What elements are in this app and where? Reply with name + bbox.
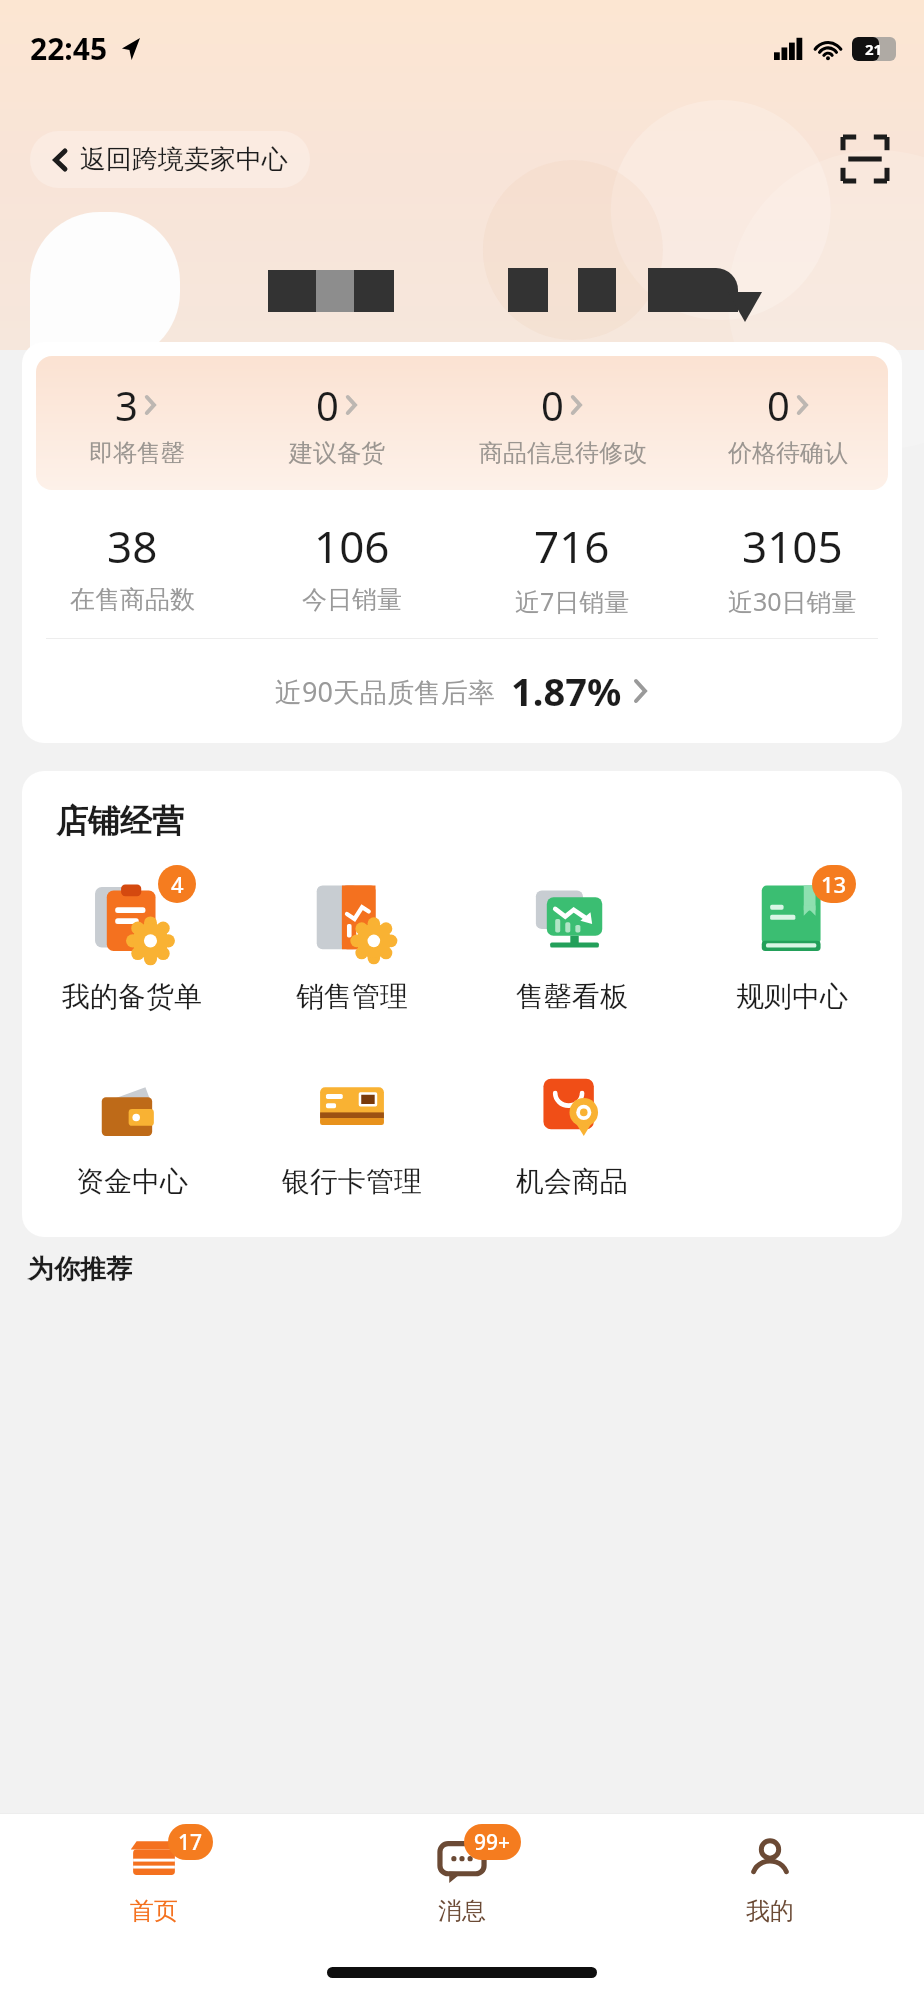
staticText: 消息 <box>438 1896 486 1926</box>
staticText: 1.87% <box>511 665 622 717</box>
button[interactable]: 3 <box>36 378 237 468</box>
staticText: 0 <box>316 378 339 432</box>
staticText: 资金中心 <box>76 1164 188 1199</box>
button[interactable]: 银行卡管理 <box>242 1052 462 1203</box>
button[interactable]: 716 <box>462 516 682 618</box>
staticText: 3105 <box>742 516 843 576</box>
staticText: 销售管理 <box>296 979 408 1014</box>
staticText: 17 <box>178 1828 203 1857</box>
staticText: 在售商品数 <box>70 584 195 615</box>
staticText: 今日销量 <box>302 584 402 615</box>
staticText: 近90天品质售后率 <box>275 673 495 710</box>
button[interactable]: 机会商品 <box>462 1052 682 1203</box>
staticText: 3 <box>115 378 138 432</box>
staticText: 商品信息待修改 <box>479 438 647 468</box>
staticText: 我的备货单 <box>62 979 202 1014</box>
staticText: 106 <box>314 516 390 576</box>
staticText: 99+ <box>474 1828 511 1857</box>
staticText: 69 人关注 <box>700 350 824 388</box>
button[interactable]: 近90天品质售后率 <box>22 639 902 743</box>
staticText: 银行卡管理 <box>282 1164 422 1199</box>
staticText: 4 <box>171 869 184 899</box>
staticText: 0 <box>541 378 564 432</box>
staticText: 首页 <box>130 1896 178 1926</box>
button[interactable]: 0 <box>437 378 688 468</box>
staticText: 22:45 <box>30 28 108 69</box>
staticText: 售罄看板 <box>516 979 628 1014</box>
button[interactable]: 3105 <box>682 516 902 618</box>
button[interactable]: 106 <box>242 516 462 615</box>
staticText: 即将售罄 <box>89 438 185 468</box>
staticText: 近7日销量 <box>515 584 630 618</box>
button[interactable]: 0 <box>237 378 437 468</box>
staticText: 38 <box>107 516 158 576</box>
button[interactable]: 17 <box>0 1814 308 1944</box>
button[interactable]: 38 <box>22 516 242 615</box>
staticText: 规则中心 <box>736 979 848 1014</box>
button[interactable]: 0 <box>688 378 888 468</box>
staticText: 为你推荐 <box>28 1253 132 1286</box>
button[interactable]: 资金中心 <box>22 1052 242 1203</box>
button[interactable]: 销售管理 <box>242 867 462 1018</box>
staticText: 近30日销量 <box>728 584 857 618</box>
staticText: 13 <box>821 869 847 899</box>
staticText: 建议备货 <box>289 438 385 468</box>
staticText: 店铺经营 <box>56 801 184 841</box>
button[interactable]: 我的 <box>616 1814 924 1944</box>
button[interactable]: 99+ <box>308 1814 616 1944</box>
button[interactable]: 返回跨境卖家中心 <box>30 131 310 188</box>
staticText: 返回跨境卖家中心 <box>80 143 288 176</box>
button[interactable]: 4 <box>22 867 242 1018</box>
staticText: 机会商品 <box>516 1164 628 1199</box>
staticText: 价格待确认 <box>728 438 848 468</box>
button[interactable] <box>30 212 180 362</box>
staticText: 716 <box>534 516 610 576</box>
staticText: 0 <box>767 378 790 432</box>
button[interactable]: 扫一扫 <box>836 130 894 188</box>
button[interactable]: 13 <box>682 867 902 1018</box>
staticText: 21 <box>865 39 883 59</box>
button[interactable]: 售罄看板 <box>462 867 682 1018</box>
staticText: 我的 <box>746 1896 794 1926</box>
